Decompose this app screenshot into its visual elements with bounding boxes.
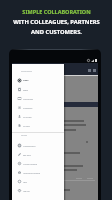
staticText: Notification Settings (23, 172, 41, 174)
staticText: Pages (23, 89, 29, 91)
staticText: Log Out (23, 190, 30, 192)
staticText: Workspaces (23, 98, 34, 100)
button[interactable]: Colleagues (12, 103, 64, 112)
staticText: Account Settings (23, 163, 38, 165)
staticText: AND CUSTOMERS. (31, 28, 82, 36)
button[interactable]: Workspaces (12, 94, 64, 103)
other: Wifi (87, 59, 90, 62)
staticText: Administration (23, 145, 36, 147)
staticText: OTHER (21, 134, 27, 136)
staticText: My Files (23, 125, 30, 127)
staticText: News (23, 79, 29, 82)
staticText: MAIN MENU (21, 70, 33, 72)
button[interactable]: Account Settings (12, 159, 64, 168)
button[interactable]: My Files (12, 121, 64, 130)
staticText: Colleagues (23, 107, 33, 109)
button[interactable]: Administration (12, 141, 64, 150)
button[interactable]: Help (12, 177, 64, 186)
button[interactable]: News (12, 76, 64, 85)
button[interactable]: Pages (12, 85, 64, 94)
staticText: SIMPLE COLLABORATION (22, 8, 91, 15)
button[interactable]: My Profile (12, 112, 64, 121)
button[interactable]: Notification Settings (12, 168, 64, 177)
button[interactable]: Log Out (12, 186, 64, 195)
staticText: Help (23, 181, 27, 183)
staticText: Edit Data (23, 154, 31, 156)
staticText: WITH COLLEAGUES, PARTNERS (13, 18, 100, 26)
button[interactable]: Edit Data (12, 150, 64, 159)
staticText: My Profile (23, 116, 32, 118)
